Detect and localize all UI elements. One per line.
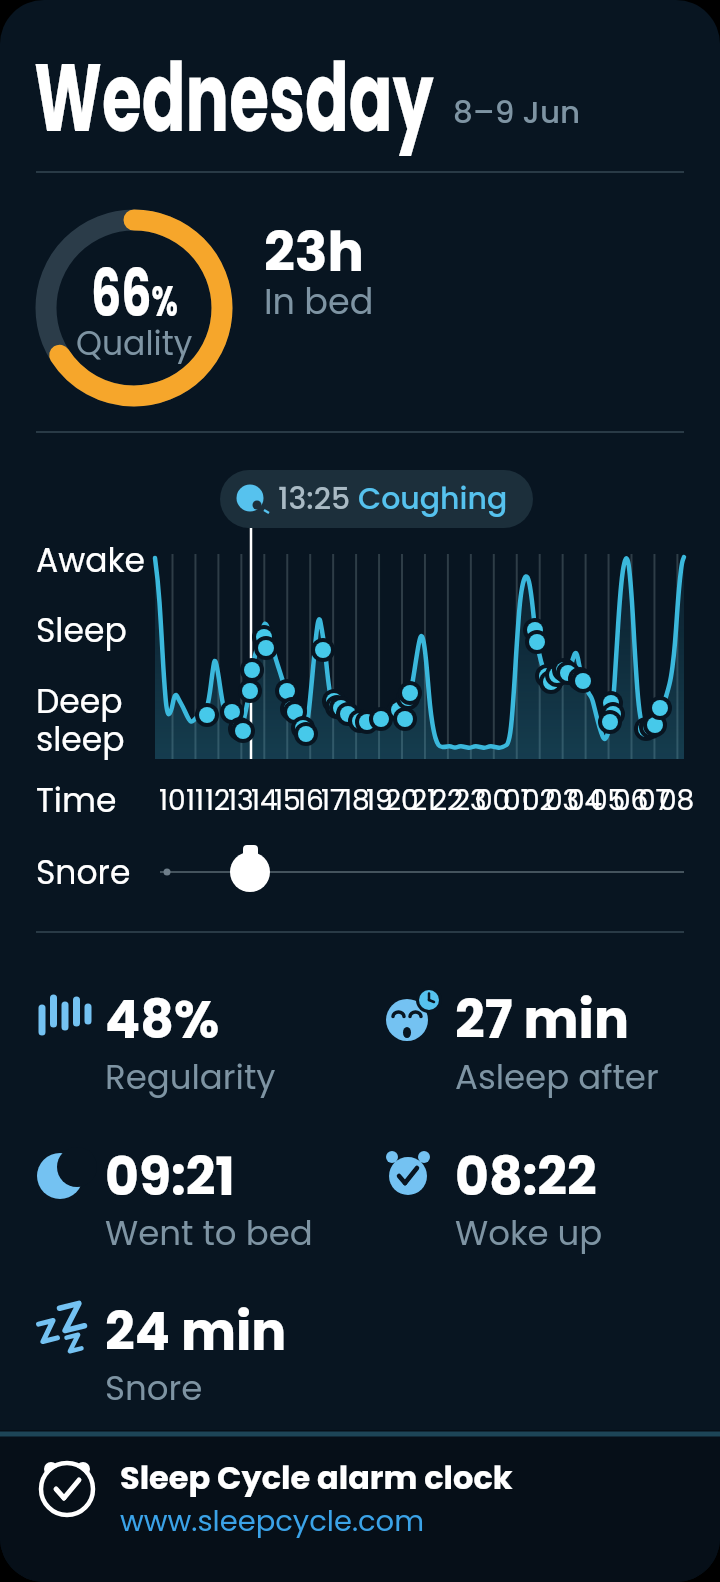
staticText: 8–9 Jun [453,90,581,133]
staticText: 16 [297,781,324,820]
staticText: 15 [274,781,301,820]
staticText: 19 [366,781,393,820]
staticText: In bed [264,277,374,326]
staticText: 07 [638,781,671,820]
staticText: 20 [385,781,419,820]
staticText: 13 [228,781,254,820]
staticText: 10 [159,781,186,820]
staticText: 17 [321,781,346,820]
staticText: Regularity [105,1053,276,1101]
staticText: 03 [545,781,580,820]
staticText: sleep [36,716,125,762]
staticText: Snore [36,849,131,895]
staticText: 08 [659,781,695,820]
staticText: 09:21 [105,1140,235,1213]
button[interactable] [220,470,533,528]
staticText: 12 [205,781,231,820]
staticText: 22 [431,781,464,820]
staticText: 00 [475,781,511,820]
staticText: 01 [503,781,530,820]
staticText: 04 [567,781,603,820]
staticText: Asleep after [455,1053,659,1101]
staticText: 14 [251,781,278,820]
staticText: Went to bed [105,1209,313,1257]
staticText: 66% [91,247,178,339]
staticText: 23 [454,781,487,820]
staticText: Quality [76,320,193,366]
staticText: Sleep Cycle alarm clock [120,1455,513,1500]
staticText: Wednesday [34,31,434,164]
staticText: 18 [343,781,370,820]
staticText: www.sleepcycle.com [120,1501,425,1542]
staticText: 21 [411,781,437,820]
staticText: Awake [36,537,146,583]
staticText: 08:22 [455,1140,597,1213]
staticText: 05 [590,781,626,820]
staticText: Time [36,777,117,823]
staticText: 48% [105,983,220,1056]
staticText: 27 min [455,983,629,1056]
staticText: 02 [522,781,556,820]
staticText: 11 [186,781,204,820]
button[interactable] [0,1430,720,1582]
staticText: 24 min [105,1295,287,1368]
staticText: Snore [105,1364,203,1412]
staticText: 06 [613,781,649,820]
staticText: 13:25 Coughing [278,478,508,520]
staticText: Deep [36,678,123,724]
staticText: 23h [264,214,364,290]
staticText: Woke up [455,1209,603,1257]
staticText: Sleep [36,607,127,653]
